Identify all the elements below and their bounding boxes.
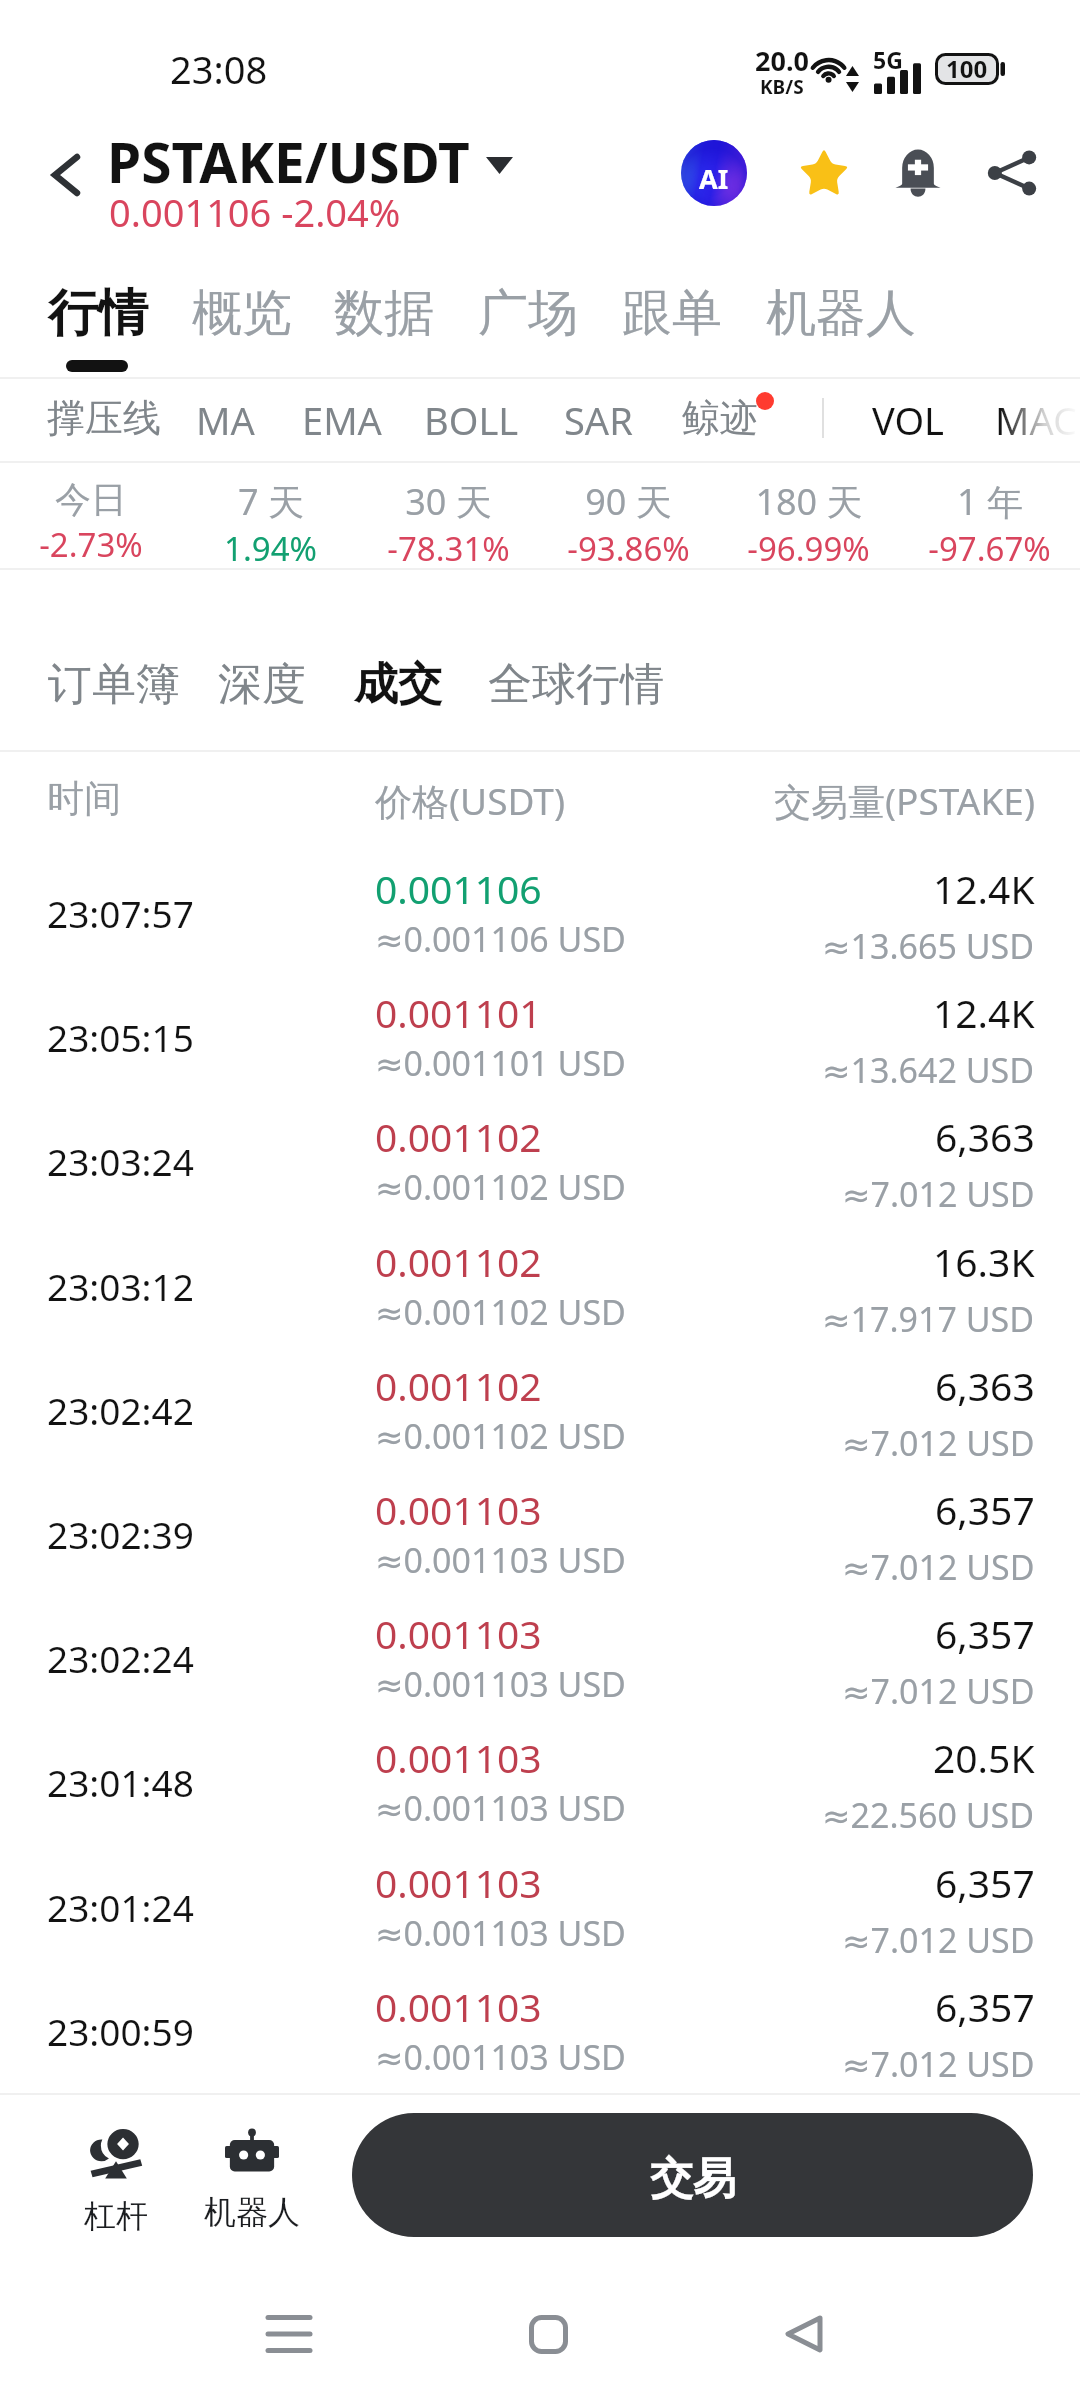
staticText: -78.31%: [387, 526, 510, 571]
button[interactable]: 23:02:42: [0, 1351, 1080, 1475]
button[interactable]: 杠杆: [70, 2118, 162, 2246]
button[interactable]: 数据: [322, 272, 446, 355]
button[interactable]: VOL: [862, 386, 955, 454]
staticText: 1.94%: [224, 526, 317, 571]
button[interactable]: Favorite: [791, 140, 857, 206]
button[interactable]: 23:07:57: [0, 854, 1080, 978]
staticText: ≈0.001101 USD: [375, 1040, 626, 1086]
staticText: ≈0.001103 USD: [375, 1785, 626, 1831]
staticText: 行情: [48, 282, 148, 345]
staticText: ≈7.012 USD: [842, 1544, 1035, 1590]
button[interactable]: 跟单: [610, 272, 734, 355]
staticText: 订单簿: [48, 657, 180, 712]
staticText: 23:08: [170, 43, 268, 95]
button[interactable]: Price alert: [885, 140, 951, 206]
staticText: 6,363: [935, 1110, 1035, 1163]
staticText: ≈0.001103 USD: [375, 1910, 626, 1956]
staticText: ≈0.001102 USD: [375, 1413, 626, 1459]
staticText: BOLL: [424, 394, 519, 446]
staticText: 6,357: [935, 1607, 1035, 1660]
staticText: 鲸迹: [682, 394, 758, 442]
staticText: ≈7.012 USD: [842, 1420, 1035, 1466]
button[interactable]: 交易: [352, 2113, 1033, 2237]
staticText: 0.001102: [375, 1235, 542, 1288]
staticText: 全球行情: [488, 657, 664, 712]
staticText: ≈0.001106 USD: [375, 916, 626, 962]
staticText: 深度: [218, 657, 306, 712]
button[interactable]: 23:00:59: [0, 1972, 1080, 2096]
staticText: ≈13.642 USD: [822, 1047, 1035, 1093]
button[interactable]: 广场: [466, 272, 590, 355]
staticText: -96.99%: [747, 526, 870, 571]
button[interactable]: 23:01:24: [0, 1848, 1080, 1972]
staticText: 1 年: [957, 477, 1023, 526]
staticText: 交易量(PSTAKE): [774, 775, 1035, 826]
staticText: PSTAKE/USDT: [107, 124, 470, 199]
staticText: 0.001103: [375, 1607, 542, 1660]
staticText: -97.67%: [928, 526, 1051, 571]
staticText: 12.4K: [933, 986, 1035, 1039]
button[interactable]: Go back: [764, 2294, 844, 2374]
button[interactable]: EMA: [292, 386, 392, 454]
staticText: 撑压线: [47, 394, 161, 442]
staticText: 6,357: [935, 1483, 1035, 1536]
staticText: ≈7.012 USD: [842, 1668, 1035, 1714]
button[interactable]: 23:02:24: [0, 1599, 1080, 1723]
button[interactable]: 成交: [342, 645, 454, 724]
button[interactable]: 行情: [36, 272, 160, 355]
staticText: 90 天: [585, 477, 672, 526]
button[interactable]: 深度: [206, 645, 318, 724]
button[interactable]: 机器人: [754, 272, 928, 355]
staticText: 时间: [47, 775, 121, 822]
staticText: 交易: [650, 2152, 736, 2206]
button[interactable]: SAR: [554, 386, 643, 454]
button[interactable]: 23:03:12: [0, 1227, 1080, 1351]
staticText: 100: [946, 52, 988, 85]
button[interactable]: 1 年: [899, 477, 1079, 571]
button[interactable]: 全球行情: [476, 645, 676, 724]
staticText: 杠杆: [84, 2196, 148, 2236]
button[interactable]: 23:01:48: [0, 1723, 1080, 1847]
staticText: ≈0.001103 USD: [375, 2034, 626, 2080]
staticText: ≈0.001102 USD: [375, 1289, 626, 1335]
staticText: 6,357: [935, 1980, 1035, 2033]
button[interactable]: 23:03:24: [0, 1102, 1080, 1226]
button[interactable]: Back: [22, 130, 110, 220]
button[interactable]: MACD: [985, 386, 1080, 454]
button[interactable]: Recent apps: [249, 2294, 329, 2374]
button[interactable]: 23:02:39: [0, 1475, 1080, 1599]
button[interactable]: BOLL: [414, 386, 529, 454]
button[interactable]: 今日: [1, 477, 181, 567]
staticText: ≈7.012 USD: [842, 2041, 1035, 2087]
button[interactable]: Share: [979, 140, 1045, 206]
staticText: AI: [699, 160, 729, 197]
staticText: 今日: [55, 477, 127, 522]
button[interactable]: AI assistant: [681, 140, 747, 206]
button[interactable]: MA: [186, 386, 265, 454]
button[interactable]: 30 天: [358, 477, 538, 571]
staticText: 180 天: [755, 477, 863, 526]
button[interactable]: 撑压线: [37, 386, 171, 450]
button[interactable]: 订单簿: [36, 645, 192, 724]
staticText: 跟单: [622, 282, 722, 345]
button[interactable]: Home: [508, 2294, 588, 2374]
staticText: 0.001106: [375, 862, 542, 915]
button[interactable]: 180 天: [718, 477, 898, 571]
button[interactable]: 鲸迹: [672, 386, 768, 450]
staticText: 23:00:59: [47, 2006, 194, 2056]
staticText: 7 天: [238, 477, 304, 526]
staticText: EMA: [302, 394, 382, 446]
staticText: ≈0.001103 USD: [375, 1661, 626, 1707]
staticText: 0.001103: [375, 1483, 542, 1536]
staticText: 成交: [354, 657, 442, 712]
button[interactable]: 7 天: [180, 477, 360, 571]
staticText: ≈13.665 USD: [822, 923, 1035, 969]
button[interactable]: 机器人: [190, 2116, 314, 2242]
staticText: 12.4K: [933, 862, 1035, 915]
staticText: 6,363: [935, 1359, 1035, 1412]
button[interactable]: 概览: [180, 272, 304, 355]
staticText: 0.001102: [375, 1110, 542, 1163]
button[interactable]: 90 天: [538, 477, 718, 571]
button[interactable]: 23:05:15: [0, 978, 1080, 1102]
staticText: VOL: [872, 394, 945, 446]
